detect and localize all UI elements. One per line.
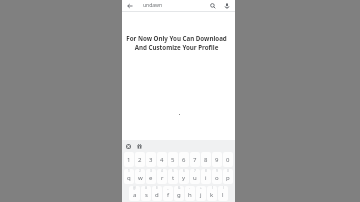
staticText: 8: [205, 169, 207, 173]
staticText: $: [156, 186, 158, 190]
button[interactable]: Voice search: [223, 2, 231, 10]
button[interactable]: Recent: [124, 142, 132, 150]
button[interactable]: 8: [201, 169, 211, 184]
button[interactable]: Search: [209, 2, 217, 10]
staticText: 0: [226, 156, 230, 164]
staticText: 7: [194, 169, 196, 173]
button[interactable]: 3: [146, 169, 156, 184]
staticText: 7: [193, 156, 197, 164]
staticText: 5: [172, 169, 174, 173]
button[interactable]: 7: [190, 169, 200, 184]
staticText: 0: [227, 169, 229, 173]
staticText: u: [193, 174, 197, 182]
button[interactable]: 0: [223, 169, 233, 184]
staticText: d: [155, 191, 159, 199]
button[interactable]: _: [163, 186, 173, 201]
button[interactable]: +: [196, 186, 206, 201]
staticText: l: [222, 191, 224, 199]
button[interactable]: (: [207, 186, 217, 201]
button[interactable]: 4: [157, 152, 167, 167]
staticText: y: [182, 174, 186, 182]
staticText: 2: [139, 169, 141, 173]
staticText: 5: [171, 156, 175, 164]
button[interactable]: 4: [157, 169, 167, 184]
button[interactable]: 2: [135, 152, 145, 167]
staticText: _: [167, 186, 169, 190]
button[interactable]: ): [218, 186, 228, 201]
button[interactable]: 5: [168, 152, 178, 167]
staticText: q: [127, 174, 131, 182]
button[interactable]: 9: [212, 169, 222, 184]
button[interactable]: 6: [179, 169, 189, 184]
staticText: (: [212, 186, 213, 190]
staticText: 3: [150, 169, 152, 173]
staticText: @: [133, 186, 136, 190]
staticText: i: [205, 174, 207, 182]
staticText: k: [210, 191, 214, 199]
button[interactable]: -: [185, 186, 195, 201]
staticText: 1: [128, 169, 130, 173]
button[interactable]: Stickers: [135, 142, 143, 150]
button[interactable]: 2: [135, 169, 145, 184]
staticText: s: [145, 191, 148, 199]
button[interactable]: Back: [122, 0, 235, 11]
button[interactable]: Back: [126, 2, 134, 10]
staticText: f: [167, 191, 170, 199]
staticText: o: [215, 174, 219, 182]
button[interactable]: $: [152, 186, 162, 201]
staticText: 1: [127, 156, 131, 164]
button[interactable]: #: [141, 186, 151, 201]
staticText: h: [188, 191, 192, 199]
button[interactable]: @: [129, 186, 140, 201]
staticText: r: [161, 174, 164, 182]
staticText: 4: [161, 169, 163, 173]
staticText: a: [133, 191, 137, 199]
button[interactable]: 3: [146, 152, 156, 167]
staticText: +: [200, 186, 202, 190]
staticText: &: [178, 186, 181, 190]
button[interactable]: 5: [168, 169, 178, 184]
button[interactable]: 1: [124, 152, 134, 167]
staticText: j: [200, 191, 202, 199]
button[interactable]: 0: [223, 152, 233, 167]
staticText: 9: [216, 169, 218, 173]
button[interactable]: 1: [124, 169, 134, 184]
staticText: #: [145, 186, 148, 190]
button[interactable]: 8: [201, 152, 211, 167]
staticText: 6: [183, 169, 185, 173]
button[interactable]: 6: [179, 152, 189, 167]
staticText: ): [223, 186, 224, 190]
staticText: 8: [204, 156, 208, 164]
staticText: -: [189, 186, 191, 190]
staticText: 9: [215, 156, 219, 164]
staticText: 3: [149, 156, 153, 164]
staticText: w: [138, 174, 143, 182]
staticText: t: [172, 174, 175, 182]
button[interactable]: 7: [190, 152, 200, 167]
staticText: 2: [138, 156, 142, 164]
staticText: e: [149, 174, 153, 182]
staticText: For Now Only You Can Download And Custom…: [122, 34, 231, 52]
button[interactable]: &: [174, 186, 184, 201]
staticText: undawn: [143, 2, 163, 9]
staticText: 6: [182, 156, 186, 164]
staticText: g: [177, 191, 181, 199]
staticText: p: [226, 174, 230, 182]
button[interactable]: 9: [212, 152, 222, 167]
staticText: 4: [160, 156, 164, 164]
